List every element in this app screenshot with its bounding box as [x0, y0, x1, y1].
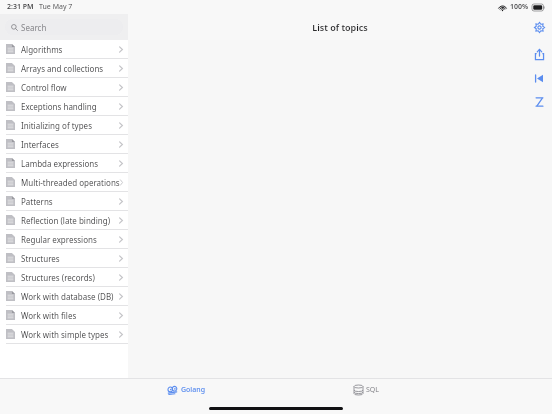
staticText: Work with simple types: [21, 329, 109, 340]
button[interactable]: Settings: [531, 19, 547, 35]
button[interactable]: Golang: [120, 379, 252, 401]
button[interactable]: Structures (records): [0, 268, 128, 287]
staticText: Search: [21, 22, 47, 33]
button[interactable]: SQL: [300, 379, 432, 401]
button[interactable]: Edit: [531, 94, 547, 110]
staticText: SQL: [366, 385, 379, 395]
button[interactable]: Search: [5, 19, 123, 35]
staticText: Algorithms: [21, 44, 63, 55]
button[interactable]: Work with database (DB): [0, 287, 128, 306]
button[interactable]: Share: [531, 46, 547, 62]
staticText: List of topics: [128, 21, 552, 33]
button[interactable]: Multi-threaded operations: [0, 173, 128, 192]
button[interactable]: Patterns: [0, 192, 128, 211]
button[interactable]: Structures: [0, 249, 128, 268]
button[interactable]: Previous: [531, 70, 547, 86]
staticText: Multi-threaded operations: [21, 177, 120, 188]
button[interactable]: Algorithms: [0, 40, 128, 59]
staticText: Work with database (DB): [21, 291, 114, 302]
staticText: Patterns: [21, 196, 53, 207]
staticText: Golang: [181, 385, 205, 395]
button[interactable]: Regular expressions: [0, 230, 128, 249]
staticText: Lambda expressions: [21, 158, 99, 169]
staticText: 2:31 PM: [7, 2, 34, 12]
button[interactable]: Work with simple types: [0, 325, 128, 344]
staticText: Control flow: [21, 82, 67, 93]
staticText: Initializing of types: [21, 120, 92, 131]
staticText: Tue May 7: [39, 2, 73, 12]
button[interactable]: Interfaces: [0, 135, 128, 154]
staticText: Arrays and collections: [21, 63, 104, 74]
button[interactable]: Lambda expressions: [0, 154, 128, 173]
staticText: Structures: [21, 253, 60, 264]
staticText: Exceptions handling: [21, 101, 97, 112]
button[interactable]: Arrays and collections: [0, 59, 128, 78]
staticText: Regular expressions: [21, 234, 97, 245]
button[interactable]: Exceptions handling: [0, 97, 128, 116]
button[interactable]: Initializing of types: [0, 116, 128, 135]
staticText: Interfaces: [21, 139, 59, 150]
staticText: Structures (records): [21, 272, 95, 283]
button[interactable]: Reflection (late binding): [0, 211, 128, 230]
button[interactable]: Control flow: [0, 78, 128, 97]
staticText: Reflection (late binding): [21, 215, 111, 226]
button[interactable]: Work with files: [0, 306, 128, 325]
staticText: Work with files: [21, 310, 77, 321]
staticText: 100%: [510, 2, 529, 12]
